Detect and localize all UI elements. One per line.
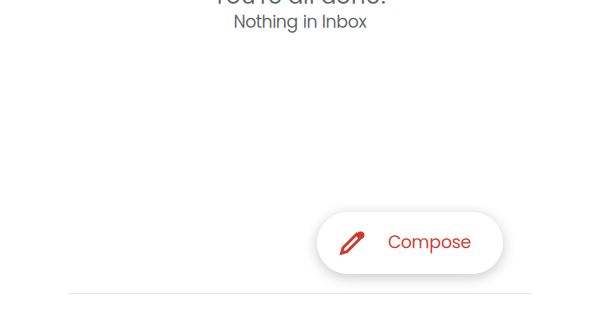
- staticText: Compose: [388, 230, 471, 254]
- button[interactable]: Compose: [317, 212, 503, 274]
- staticText: You're all done!: [213, 0, 387, 12]
- staticText: Nothing in Inbox: [233, 9, 366, 34]
